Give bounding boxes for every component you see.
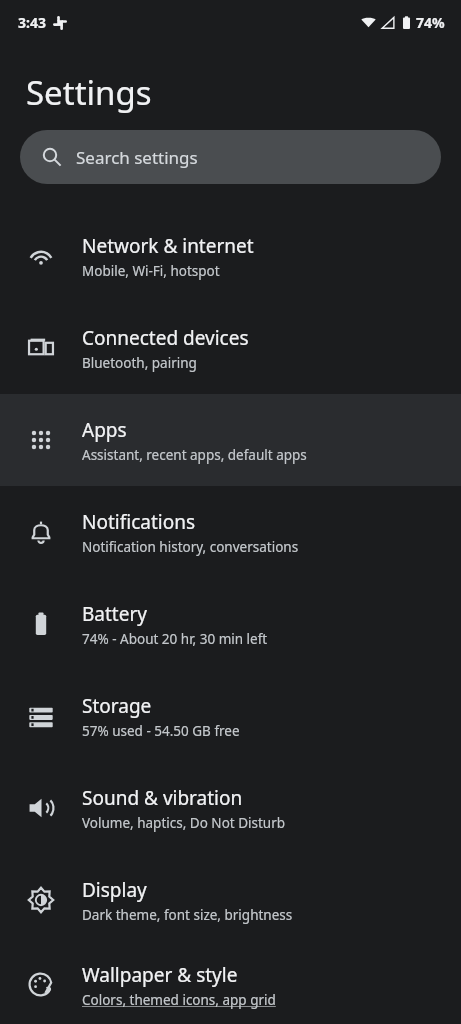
button[interactable]: Network & internet bbox=[0, 210, 461, 302]
staticText: Dark theme, font size, brightness bbox=[82, 906, 293, 924]
staticText: Battery bbox=[82, 601, 147, 627]
staticText: Sound & vibration bbox=[82, 785, 243, 811]
button[interactable]: Connected devices bbox=[0, 302, 461, 394]
button[interactable]: Notifications bbox=[0, 486, 461, 578]
button[interactable]: Storage bbox=[0, 670, 461, 762]
staticText: 57% used - 54.50 GB free bbox=[82, 722, 240, 740]
staticText: 74% - About 20 hr, 30 min left bbox=[82, 630, 268, 648]
button[interactable]: Search settings bbox=[20, 130, 441, 184]
staticText: Network & internet bbox=[82, 233, 254, 259]
staticText: Wallpaper & style bbox=[82, 962, 238, 988]
staticText: Assistant, recent apps, default apps bbox=[82, 446, 307, 464]
button[interactable]: Wallpaper & style bbox=[0, 946, 461, 1024]
button[interactable]: Battery bbox=[0, 578, 461, 670]
staticText: Apps bbox=[82, 417, 127, 443]
button[interactable]: Sound & vibration bbox=[0, 762, 461, 854]
staticText: Connected devices bbox=[82, 325, 249, 351]
button[interactable]: Apps bbox=[0, 394, 461, 486]
staticText: Notifications bbox=[82, 509, 196, 535]
staticText: Mobile, Wi-Fi, hotspot bbox=[82, 262, 220, 280]
staticText: Settings bbox=[26, 70, 152, 115]
staticText: Storage bbox=[82, 693, 152, 719]
staticText: Display bbox=[82, 877, 147, 903]
button[interactable]: Display bbox=[0, 854, 461, 946]
staticText: Colors, themed icons, app grid bbox=[82, 991, 276, 1009]
staticText: Notification history, conversations bbox=[82, 538, 299, 556]
staticText: Bluetooth, pairing bbox=[82, 354, 197, 372]
staticText: Search settings bbox=[76, 146, 198, 169]
staticText: 3:43 bbox=[18, 13, 46, 32]
staticText: 74% bbox=[416, 13, 445, 32]
staticText: Volume, haptics, Do Not Disturb bbox=[82, 814, 286, 832]
